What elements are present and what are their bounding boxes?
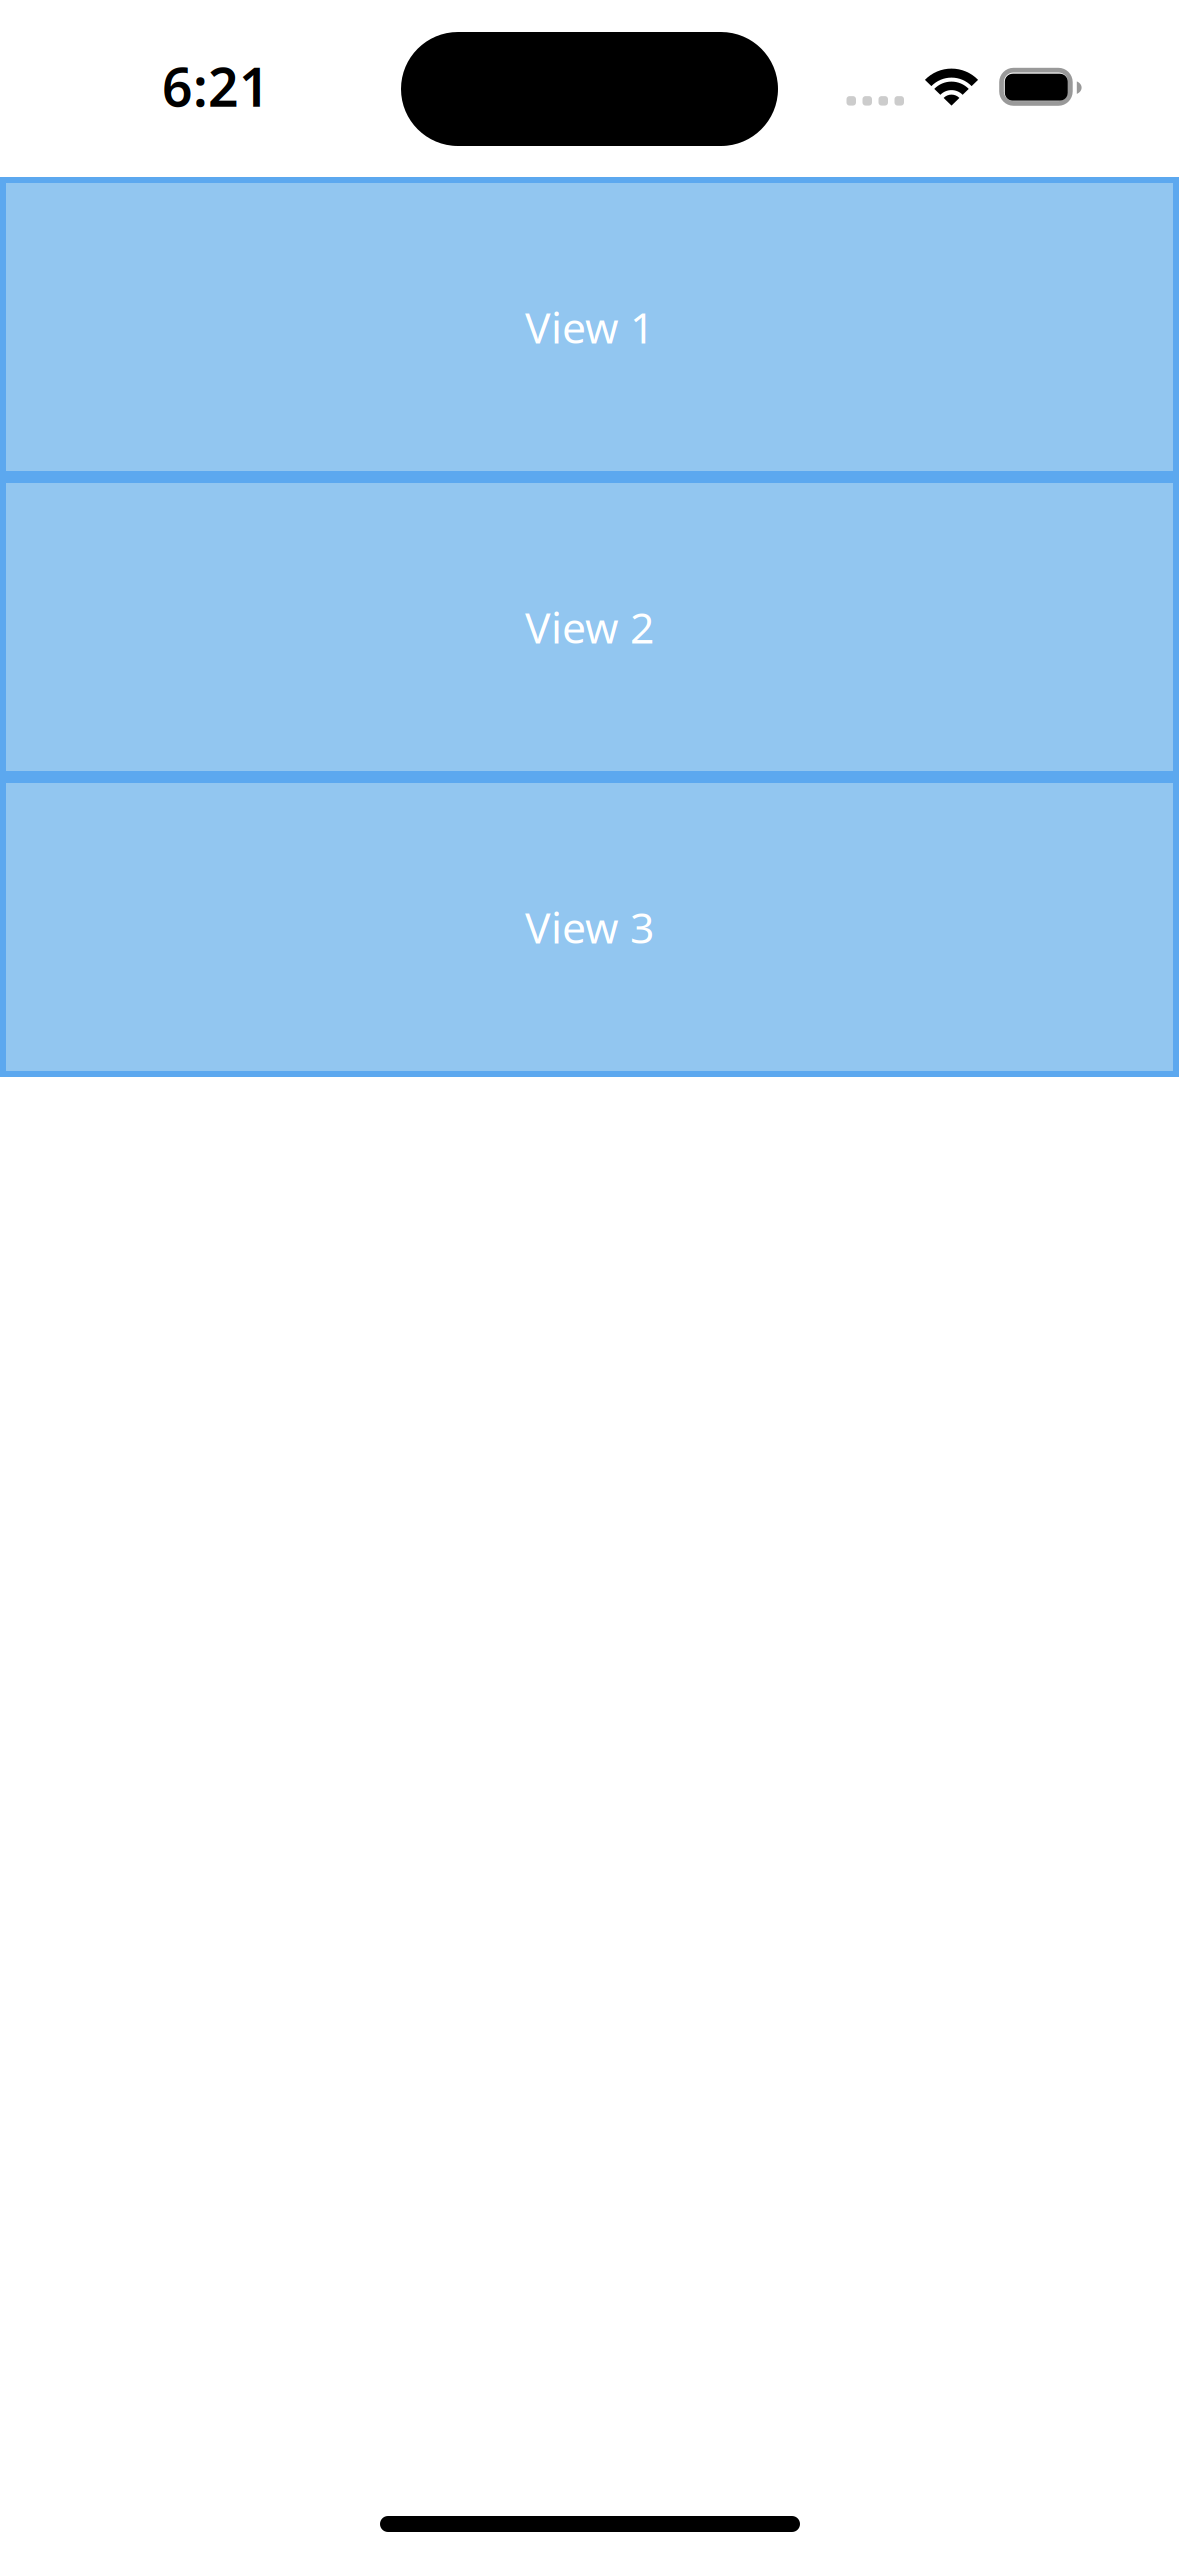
staticText: View 2: [525, 599, 654, 655]
button[interactable]: View 2: [0, 477, 1179, 777]
staticText: 6:21: [162, 51, 270, 121]
button[interactable]: View 3: [0, 777, 1179, 1077]
staticText: View 1: [525, 299, 654, 355]
staticText: View 3: [525, 899, 654, 955]
button[interactable]: View 1: [0, 177, 1179, 477]
